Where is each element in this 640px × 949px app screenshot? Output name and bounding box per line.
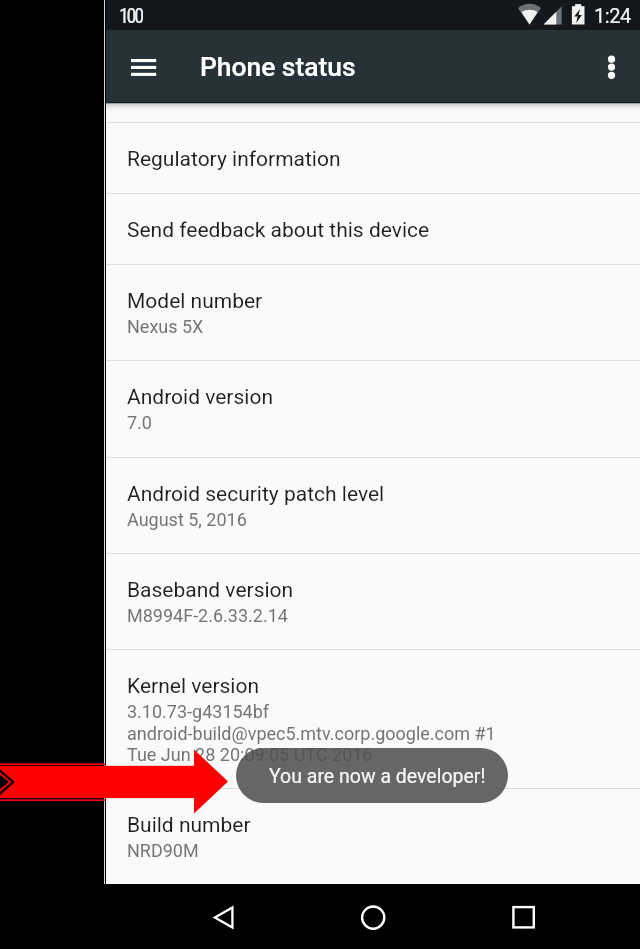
staticText: Tue Jun 28 20:09:05 UTC 2016 [127,744,373,765]
button[interactable]: Baseband version [106,554,640,649]
button[interactable]: Android security patch level [106,458,640,554]
button[interactable]: Back [199,893,247,941]
button[interactable]: Build number [106,789,640,883]
button[interactable]: Open navigation drawer [118,43,166,91]
staticText: Android version [127,385,273,410]
staticText: You are now a developer! [269,765,486,788]
button[interactable]: You are now a developer! [236,748,508,803]
button[interactable]: More options [587,43,635,91]
staticText: NRD90M [127,840,199,861]
staticText: 7.0 [127,412,152,433]
button[interactable]: Recent apps [499,893,547,941]
staticText: Phone status [200,52,356,83]
button[interactable]: Home [349,893,397,941]
staticText: August 5, 2016 [127,509,247,530]
button[interactable]: Send feedback about this device [106,194,640,264]
staticText: M8994F-2.6.33.2.14 [127,605,288,626]
staticText: 100 [119,4,142,27]
button[interactable]: Kernel version [106,650,640,788]
button[interactable]: Android version [106,361,640,457]
button[interactable]: Regulatory information [106,123,640,193]
staticText: Model number [127,289,263,314]
staticText: Build number [127,813,251,838]
staticText: 1:24 [594,4,631,27]
staticText: Baseband version [127,578,294,603]
staticText: Send feedback about this device [127,218,430,243]
staticText: 3.10.73-g43154bf [127,701,270,722]
staticText: Kernel version [127,674,260,699]
staticText: android-build@vpec5.mtv.corp.google.com … [127,723,496,744]
staticText: Nexus 5X [127,316,204,337]
button[interactable]: Model number [106,265,640,360]
staticText: Android security patch level [127,482,385,507]
staticText: Regulatory information [127,147,341,172]
